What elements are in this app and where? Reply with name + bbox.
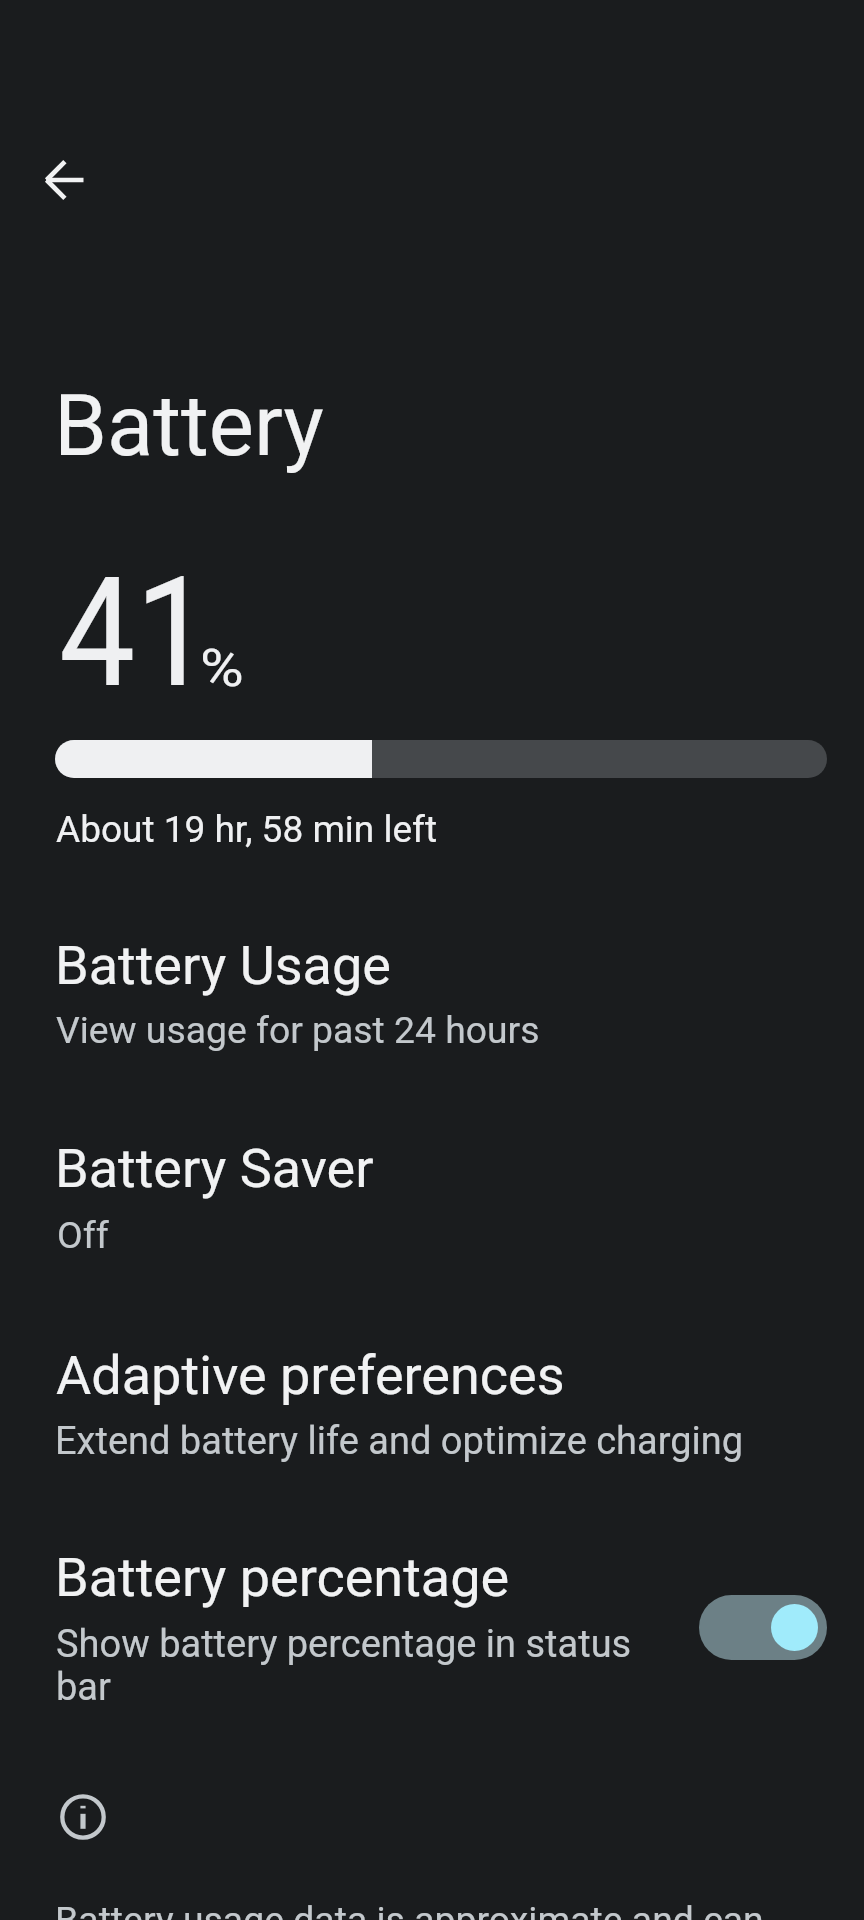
- button[interactable]: Battery Saver: [0, 1096, 864, 1284]
- staticText: About 19 hr, 58 min left: [56, 808, 438, 851]
- staticText: Adaptive preferences: [56, 1344, 565, 1407]
- button[interactable]: Show battery percentage in status bar, o…: [699, 1595, 827, 1660]
- staticText: Extend battery life and optimize chargin…: [55, 1419, 744, 1464]
- button[interactable]: Battery percentage: [0, 1504, 864, 1736]
- staticText: Show battery percentage in status bar: [56, 1622, 666, 1710]
- button[interactable]: Adaptive preferences: [0, 1300, 864, 1490]
- staticText: Battery Saver: [55, 1137, 374, 1200]
- button[interactable]: Back: [18, 134, 110, 226]
- staticText: Battery Usage: [55, 934, 391, 997]
- staticText: 41: [59, 544, 211, 722]
- staticText: Off: [57, 1213, 109, 1257]
- staticText: Battery percentage: [55, 1546, 510, 1609]
- staticText: View usage for past 24 hours: [56, 1008, 540, 1052]
- staticText: Battery: [54, 376, 324, 476]
- button[interactable]: Battery Usage: [0, 893, 864, 1080]
- staticText: %: [200, 638, 244, 698]
- staticText: Battery usage data is approximate and ca…: [55, 1898, 764, 1920]
- button[interactable]: Information: [38, 1772, 128, 1862]
